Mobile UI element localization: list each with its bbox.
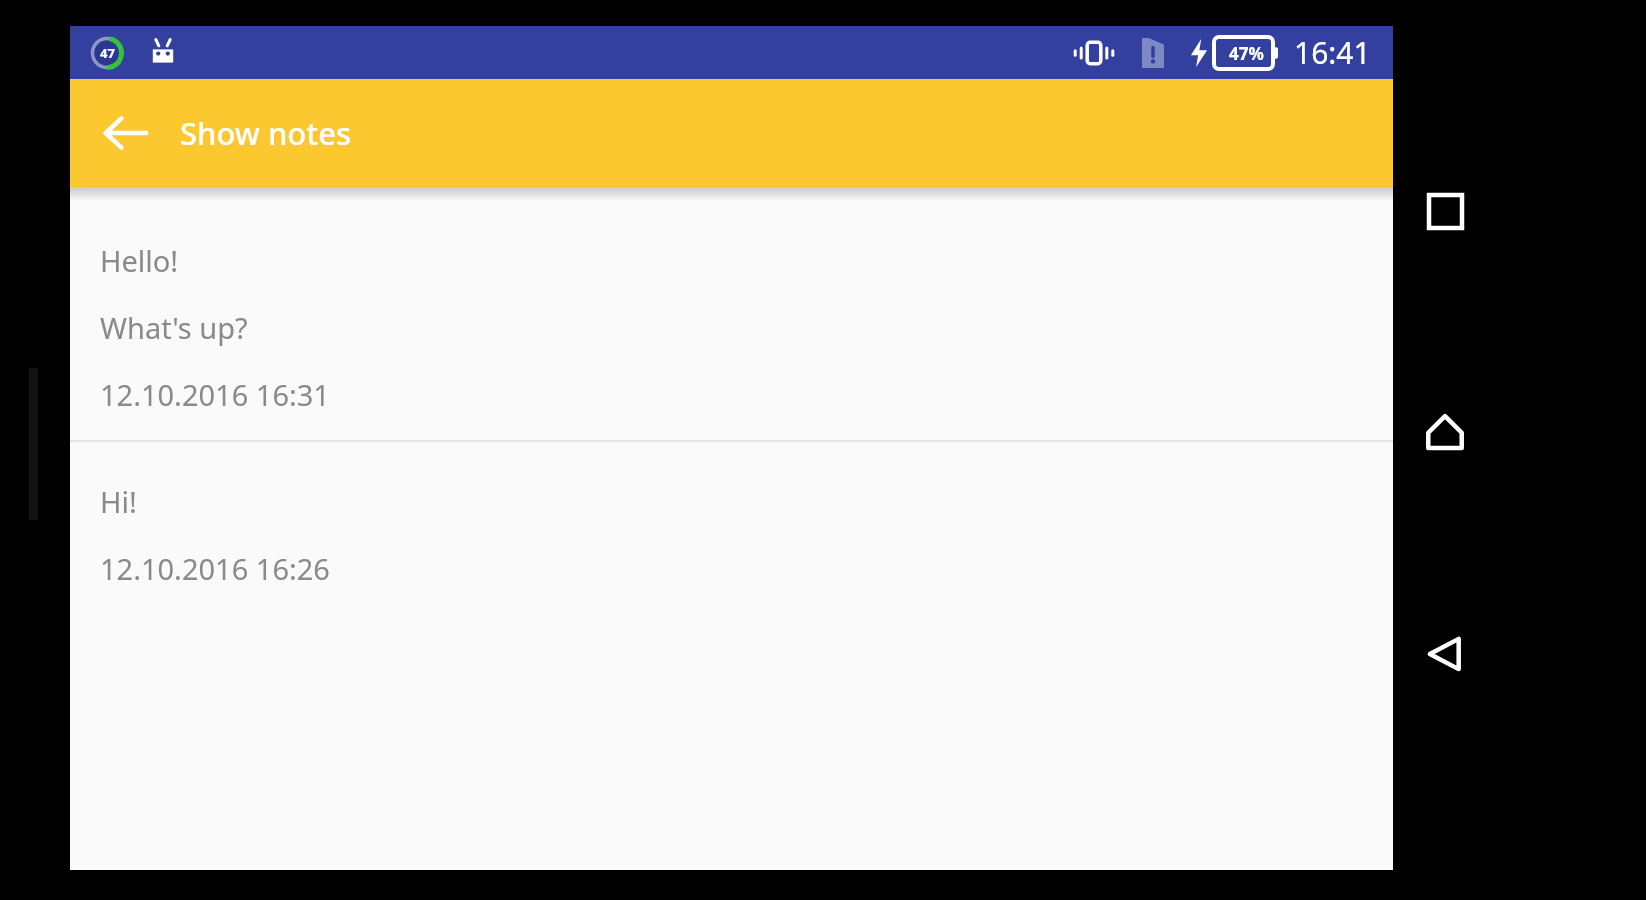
button[interactable]: Hi! [70,442,1393,614]
staticText: What's up? [100,308,248,347]
staticText: 12.10.2016 16:26 [100,549,330,588]
staticText: Hi! [100,482,137,521]
staticText: 47 [100,44,115,62]
button[interactable]: Recent apps [1419,185,1471,237]
button[interactable]: Home [1419,406,1471,458]
staticText: 47% [1229,42,1264,65]
staticText: 16:41 [1294,32,1371,73]
staticText: Show notes [180,112,351,154]
staticText: 12.10.2016 16:31 [100,375,330,414]
button[interactable]: Back [88,95,164,171]
button[interactable]: Back [1419,628,1471,680]
staticText: Hello! [100,241,179,280]
button[interactable]: Hello! [70,201,1393,440]
